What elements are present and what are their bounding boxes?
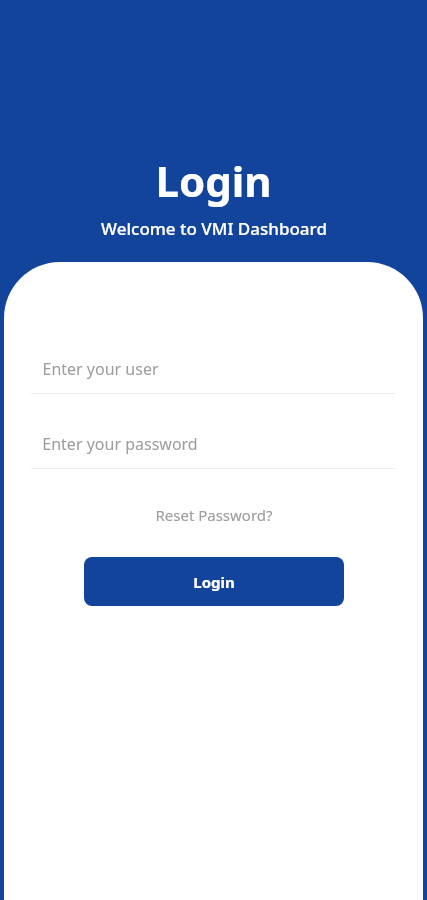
staticText: Welcome to VMI Dashboard (101, 217, 327, 240)
button[interactable]: Enter your user (4, 348, 423, 390)
button[interactable]: Enter your password (4, 423, 423, 465)
button[interactable]: Reset Password? (147, 501, 281, 529)
staticText: Enter your password (42, 433, 198, 455)
staticText: Enter your user (42, 358, 159, 380)
staticText: Login (155, 152, 272, 209)
button[interactable]: Login (84, 557, 344, 606)
staticText: Reset Password? (155, 505, 273, 525)
staticText: Login (193, 572, 235, 592)
